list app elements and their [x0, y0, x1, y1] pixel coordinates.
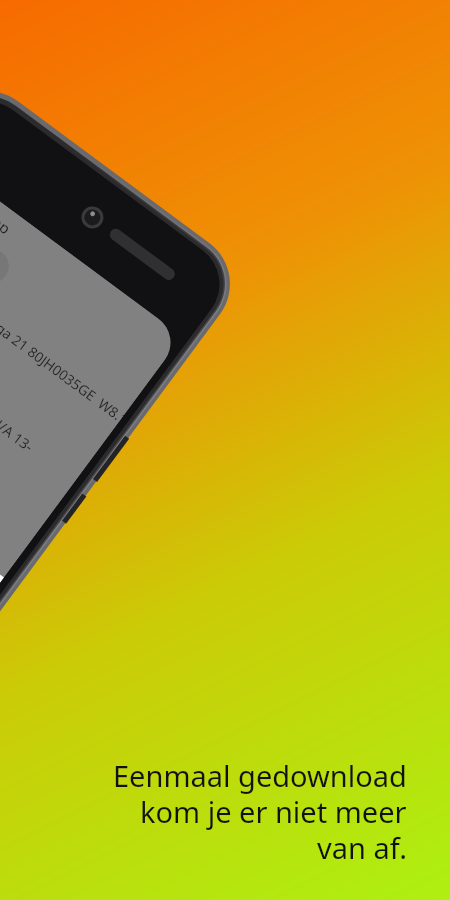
button[interactable]: Product search screen preview: [0, 0, 450, 900]
other: App promotional screenshot: [0, 0, 450, 900]
